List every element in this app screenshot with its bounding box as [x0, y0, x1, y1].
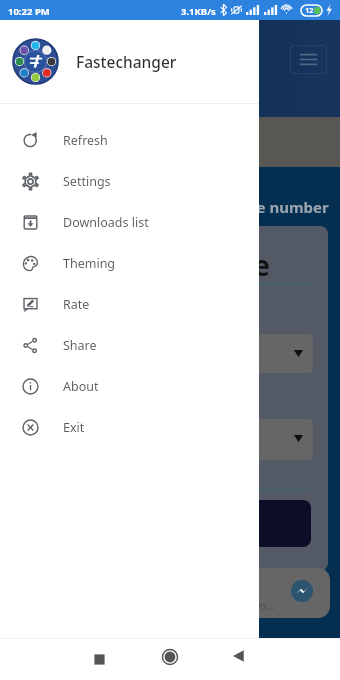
staticText: 12	[305, 5, 314, 15]
staticText: Exit	[63, 419, 85, 436]
staticText: Fastechanger	[76, 51, 177, 72]
button[interactable]: Exit	[0, 407, 259, 448]
staticText: About	[63, 378, 99, 395]
staticText: Refresh	[63, 132, 108, 149]
button[interactable]: yo...	[192, 568, 330, 618]
button[interactable]: Menu	[290, 45, 327, 74]
button[interactable]: Theming	[0, 243, 259, 284]
staticText: Choose	[168, 246, 270, 284]
button[interactable]: Recents	[92, 652, 107, 667]
button[interactable]: Share	[0, 325, 259, 366]
button[interactable]: Refresh	[0, 120, 259, 161]
staticText: Change number	[209, 197, 329, 217]
staticText: 10:22 PM	[8, 5, 50, 18]
staticText: yo...	[255, 599, 275, 613]
button[interactable]: Downloads list	[0, 202, 259, 243]
button[interactable]: About	[0, 366, 259, 407]
button[interactable]: Back	[230, 648, 246, 664]
staticText: Downloads list	[63, 214, 149, 231]
button[interactable]: Rate	[0, 284, 259, 325]
staticText: Theming	[63, 255, 116, 272]
button[interactable]	[220, 500, 311, 547]
button[interactable]	[220, 334, 313, 373]
button[interactable]: Settings	[0, 161, 259, 202]
staticText: Share	[63, 337, 97, 354]
staticText: Rate	[63, 296, 90, 313]
button[interactable]: Home	[161, 648, 179, 666]
button[interactable]	[220, 419, 313, 460]
staticText: 3.1KB/s	[181, 5, 216, 18]
staticText: Settings	[63, 173, 111, 190]
